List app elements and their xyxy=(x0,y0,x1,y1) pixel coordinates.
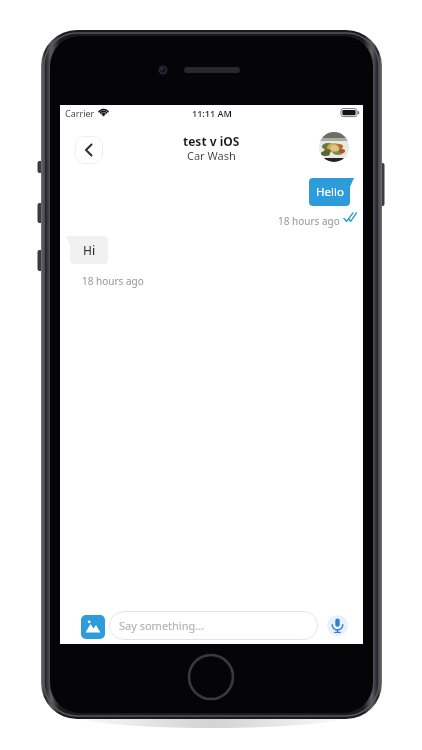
button[interactable] xyxy=(327,615,348,636)
staticText: test v iOS xyxy=(183,133,240,147)
button[interactable]: Hello xyxy=(309,178,350,206)
button[interactable] xyxy=(75,136,103,164)
staticText: 11:11 AM xyxy=(192,107,232,119)
staticText: Say something... xyxy=(119,618,205,633)
button[interactable]: Say something... xyxy=(109,611,318,640)
staticText: Hi xyxy=(83,242,96,258)
staticText: Car Wash xyxy=(187,148,236,162)
button[interactable] xyxy=(81,615,105,639)
staticText: Hello xyxy=(316,184,344,200)
button[interactable] xyxy=(319,132,349,162)
button[interactable]: Hi xyxy=(70,236,108,264)
staticText: 18 hours ago xyxy=(278,214,340,228)
staticText: Carrier xyxy=(65,107,95,119)
staticText: 18 hours ago xyxy=(82,274,144,288)
